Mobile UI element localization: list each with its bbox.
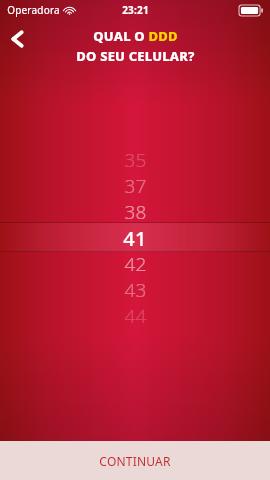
staticText: 38 xyxy=(124,199,147,225)
button[interactable]: 44 xyxy=(0,303,270,325)
staticText: 35 xyxy=(124,150,147,173)
button[interactable]: 43 xyxy=(0,277,270,303)
staticText: 42 xyxy=(124,251,147,277)
button[interactable]: 37 xyxy=(0,173,270,199)
staticText: 37 xyxy=(124,173,147,199)
button[interactable]: 41 xyxy=(0,225,270,251)
button[interactable]: 35 xyxy=(0,150,270,173)
staticText: Operadora xyxy=(7,3,60,17)
staticText: CONTINUAR xyxy=(99,453,171,469)
staticText: 43 xyxy=(124,277,147,303)
button[interactable]: 38 xyxy=(0,199,270,225)
button[interactable]: 42 xyxy=(0,251,270,277)
staticText: QUAL O DDD xyxy=(93,27,178,45)
staticText: 41 xyxy=(123,225,147,251)
staticText: DO SEU CELULAR? xyxy=(76,47,195,65)
button[interactable]: Voltar xyxy=(0,22,34,56)
button[interactable]: CONTINUAR xyxy=(0,441,270,480)
staticText: 44 xyxy=(124,303,147,325)
staticText: 23:21 xyxy=(122,3,149,17)
